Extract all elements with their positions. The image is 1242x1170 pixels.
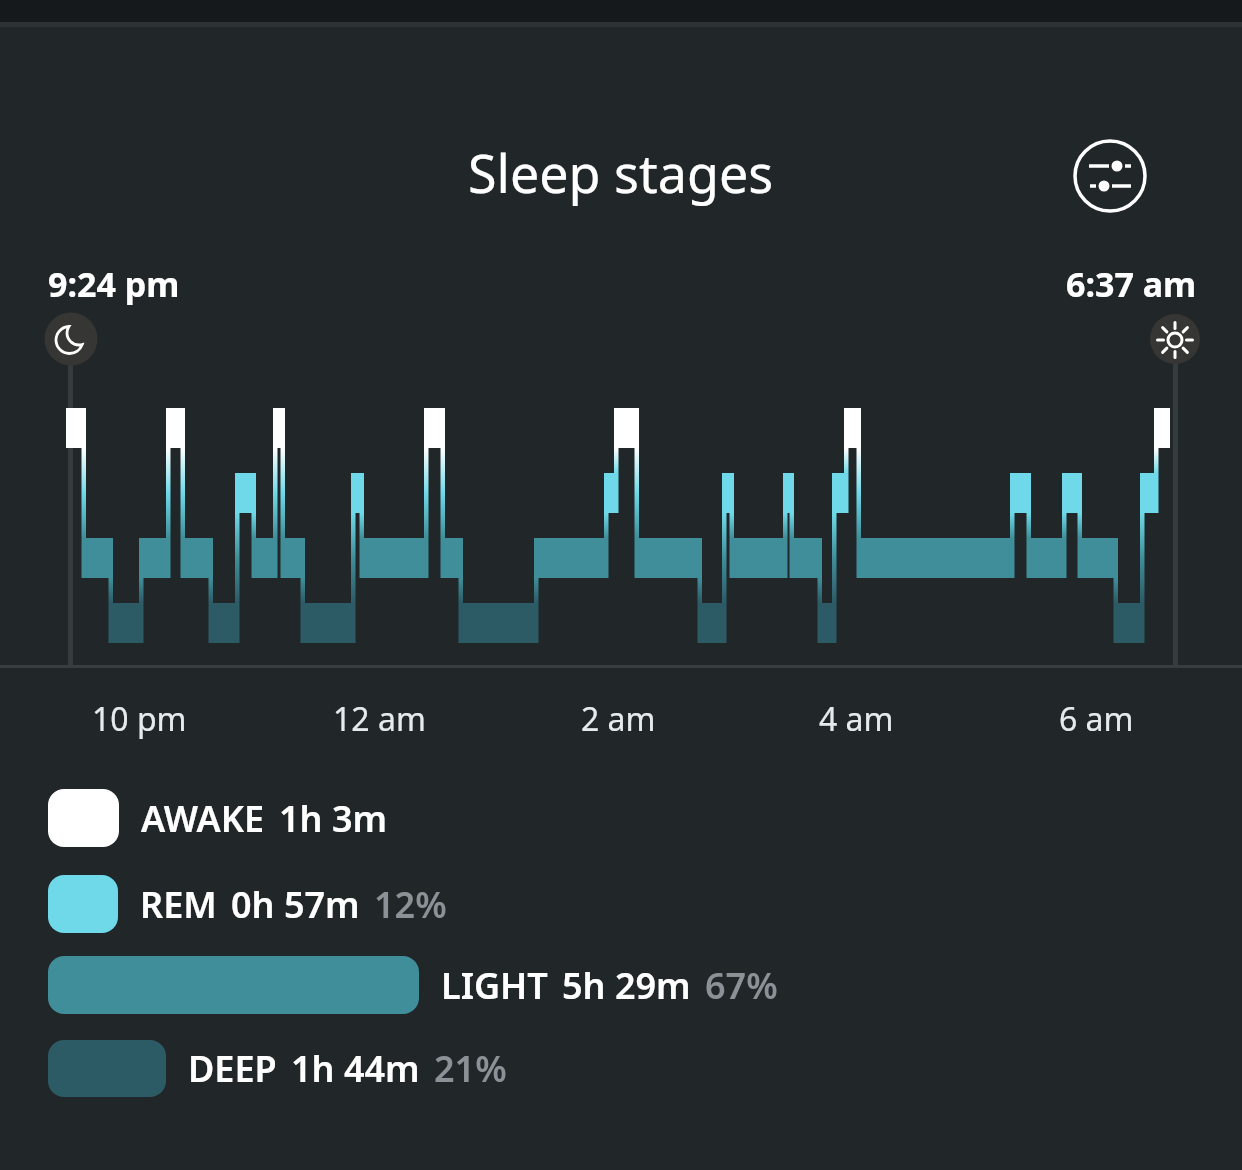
button[interactable]: [1070, 136, 1150, 216]
staticText: 21%: [434, 1044, 507, 1093]
button[interactable]: DEEP: [48, 1040, 507, 1097]
staticText: 6 am: [1059, 697, 1134, 741]
staticText: 67%: [705, 961, 778, 1010]
staticText: 6:37 am: [1066, 261, 1197, 307]
staticText: 4 am: [819, 697, 894, 741]
staticText: 10 pm: [92, 697, 187, 741]
staticText: 5h 29m: [562, 961, 691, 1010]
staticText: 1h 3m: [279, 794, 388, 843]
staticText: 1h 44m: [291, 1044, 420, 1093]
staticText: 0h 57m: [231, 880, 360, 929]
staticText: 12%: [374, 880, 447, 929]
staticText: LIGHT: [441, 961, 548, 1010]
staticText: 9:24 pm: [48, 261, 180, 307]
staticText: DEEP: [188, 1044, 277, 1093]
staticText: AWAKE: [141, 794, 265, 843]
staticText: 12 am: [333, 697, 426, 741]
staticText: Sleep stages: [468, 137, 774, 208]
staticText: 2 am: [581, 697, 656, 741]
button[interactable]: LIGHT: [48, 956, 778, 1014]
button[interactable]: REM: [48, 875, 447, 933]
staticText: REM: [140, 880, 217, 929]
button[interactable]: AWAKE: [48, 789, 388, 847]
